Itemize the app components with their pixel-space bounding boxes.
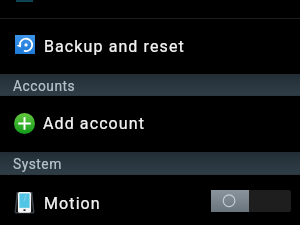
button[interactable]: Add account xyxy=(0,96,300,152)
staticText: Accounts xyxy=(13,78,76,94)
button[interactable]: Motion on/off toggle xyxy=(211,190,291,212)
staticText: System xyxy=(13,156,62,172)
staticText: Motion xyxy=(44,194,101,213)
button[interactable]: Backup and reset xyxy=(0,19,300,74)
staticText: Add account xyxy=(43,114,146,133)
button[interactable]: Motion xyxy=(0,175,300,225)
staticText: Backup and reset xyxy=(44,37,185,56)
